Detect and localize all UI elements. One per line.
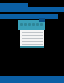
button[interactable] xyxy=(20,30,44,48)
